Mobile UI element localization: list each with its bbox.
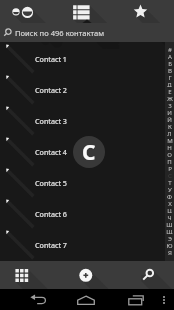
staticText: Я <box>168 248 172 255</box>
staticText: # <box>168 45 172 52</box>
button[interactable]: All contacts <box>58 0 116 23</box>
staticText: Contact 4 <box>35 147 67 157</box>
staticText: И <box>167 108 172 115</box>
button[interactable]: Alphabet index <box>165 42 174 261</box>
button[interactable]: Contact 4 <box>0 136 174 167</box>
button[interactable]: Contact 1 <box>0 43 174 74</box>
staticText: А <box>168 52 172 59</box>
button[interactable]: Dialpad <box>0 261 58 289</box>
staticText: Contact 6 <box>35 209 67 219</box>
staticText: Д <box>167 80 172 87</box>
button[interactable]: Contact 5 <box>0 167 174 198</box>
staticText: Й <box>167 115 172 122</box>
staticText: Р <box>168 164 172 171</box>
staticText: З <box>168 101 172 108</box>
button[interactable]: Favorites <box>116 0 174 23</box>
button[interactable]: Recents <box>125 289 147 310</box>
staticText: В <box>168 66 172 73</box>
button[interactable]: Contact 2 <box>0 74 174 105</box>
button[interactable]: Contact 7 <box>0 229 174 260</box>
button[interactable]: Groups <box>0 0 58 23</box>
staticText: С <box>168 171 172 178</box>
staticText: Ц <box>167 206 172 213</box>
staticText: Ф <box>167 192 172 199</box>
staticText: Щ <box>166 227 173 234</box>
staticText: Б <box>168 59 172 66</box>
staticText: Н <box>167 143 172 150</box>
staticText: Т <box>168 178 172 185</box>
staticText: Contact 5 <box>35 178 67 188</box>
staticText: Contact 1 <box>35 54 67 64</box>
button[interactable]: C <box>73 136 105 168</box>
staticText: Е <box>168 87 172 94</box>
staticText: Contact 2 <box>35 85 67 95</box>
button[interactable]: Поиск по 496 контактам <box>0 23 174 42</box>
staticText: П <box>167 157 172 164</box>
staticText: Ж <box>167 94 173 101</box>
staticText: Contact 7 <box>35 240 67 250</box>
staticText: Л <box>167 129 172 136</box>
button[interactable]: Search <box>116 261 174 289</box>
button[interactable]: Home <box>75 289 97 310</box>
button[interactable]: Contact 6 <box>0 198 174 229</box>
staticText: Г <box>168 73 172 80</box>
button[interactable]: Back <box>27 289 49 310</box>
button[interactable]: Add contact <box>58 261 116 289</box>
button[interactable]: More options <box>157 289 171 310</box>
staticText: Ю <box>166 241 173 248</box>
staticText: О <box>167 150 172 157</box>
staticText: Ч <box>167 213 172 220</box>
staticText: М <box>167 136 173 143</box>
staticText: C <box>82 138 96 167</box>
staticText: Х <box>168 199 172 206</box>
staticText: У <box>168 185 172 192</box>
staticText: К <box>168 122 172 129</box>
staticText: Поиск по 496 контактам <box>15 28 105 38</box>
staticText: Contact 3 <box>35 116 67 126</box>
button[interactable]: Contact 3 <box>0 105 174 136</box>
staticText: Э <box>168 234 172 241</box>
staticText: Ш <box>166 220 173 227</box>
